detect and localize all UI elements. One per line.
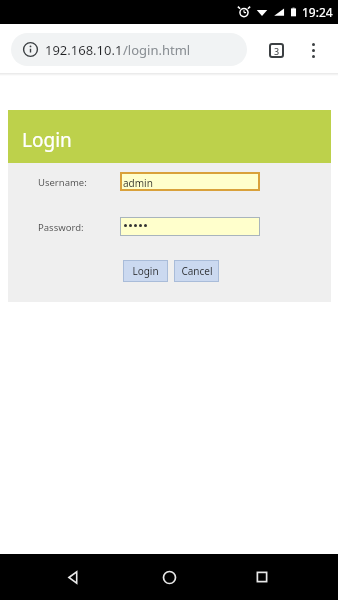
staticText: 192.168.10.1	[45, 41, 123, 59]
button[interactable]	[120, 217, 260, 236]
button[interactable]: Switch tabs, 3 open	[262, 36, 290, 64]
staticText: Username:	[38, 176, 87, 189]
button[interactable]: admin	[120, 172, 260, 191]
button[interactable]: More options	[299, 36, 327, 64]
staticText: Password:	[38, 221, 84, 234]
staticText: Login	[22, 127, 72, 153]
button[interactable]: Login	[123, 260, 168, 282]
button[interactable]: Cancel	[174, 260, 219, 282]
staticText: Login	[132, 264, 159, 278]
staticText: Cancel	[181, 264, 213, 278]
staticText: 3	[274, 45, 280, 57]
button[interactable]: Back	[60, 565, 84, 589]
button[interactable]: Recent apps	[250, 565, 274, 589]
button[interactable]: Home	[157, 565, 181, 589]
staticText: admin	[123, 176, 153, 190]
staticText: /login.html	[123, 41, 191, 59]
staticText: 19:24	[302, 4, 333, 20]
button[interactable]: 192.168.10.1	[11, 33, 247, 66]
